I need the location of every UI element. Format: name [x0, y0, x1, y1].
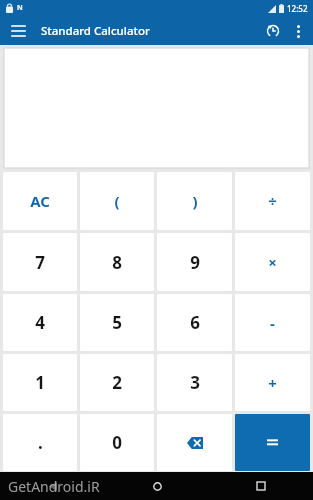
staticText: 9 — [190, 251, 200, 274]
staticText: . — [38, 431, 43, 454]
button[interactable] — [4, 48, 309, 168]
staticText: 1 — [35, 371, 45, 394]
staticText: ÷ — [268, 191, 277, 211]
button[interactable]: Home — [105, 472, 209, 500]
button[interactable]: AC — [3, 172, 77, 230]
button[interactable]: ( — [80, 172, 154, 230]
button[interactable]: Backspace — [157, 414, 232, 471]
button[interactable]: 8 — [80, 233, 154, 291]
button[interactable]: 1 — [3, 354, 77, 411]
button[interactable]: × — [235, 233, 310, 291]
button[interactable]: 9 — [157, 233, 232, 291]
staticText: 12:52 — [287, 3, 308, 14]
staticText: Standard Calculator — [41, 23, 150, 39]
staticText: - — [270, 313, 275, 333]
button[interactable]: . — [3, 414, 77, 471]
button[interactable]: 7 — [3, 233, 77, 291]
staticText: 8 — [112, 251, 122, 274]
button[interactable]: Recent apps — [209, 472, 313, 500]
staticText: ) — [192, 191, 198, 211]
button[interactable]: 3 — [157, 354, 232, 411]
staticText: 5 — [112, 311, 122, 334]
button[interactable]: + — [235, 354, 310, 411]
staticText: × — [268, 252, 277, 272]
staticText: 6 — [190, 311, 200, 334]
button[interactable]: History — [260, 18, 286, 44]
button[interactable]: 0 — [80, 414, 154, 471]
button[interactable]: ÷ — [235, 172, 310, 230]
staticText: 3 — [190, 371, 200, 394]
button[interactable]: 5 — [80, 294, 154, 351]
staticText: ( — [114, 191, 120, 211]
staticText: + — [268, 373, 277, 393]
staticText: N — [17, 3, 23, 13]
button[interactable]: Back — [0, 472, 105, 500]
button[interactable]: ) — [157, 172, 232, 230]
staticText: AC — [30, 191, 50, 211]
staticText: 4 — [35, 311, 45, 334]
staticText: GetAndroid.iR — [8, 477, 100, 496]
button[interactable] — [235, 414, 310, 471]
staticText: 2 — [112, 371, 122, 394]
button[interactable]: 2 — [80, 354, 154, 411]
button[interactable]: - — [235, 294, 310, 351]
staticText: 7 — [35, 251, 45, 274]
button[interactable]: Open navigation drawer — [8, 21, 28, 41]
staticText: 0 — [112, 431, 122, 454]
button[interactable]: 6 — [157, 294, 232, 351]
button[interactable]: More options — [286, 19, 310, 43]
button[interactable]: 4 — [3, 294, 77, 351]
